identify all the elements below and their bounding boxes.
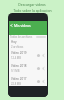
staticText: Video 2019: [11, 51, 27, 55]
staticText: Todos los archivos: [10, 35, 33, 39]
button[interactable]: Video 2018: [9, 62, 47, 75]
staticText: 9.1 MB: [11, 69, 20, 73]
staticText: 22.8 MB: [11, 82, 21, 86]
button[interactable]: Video 2019: [9, 49, 47, 62]
staticText: Video 2017: [11, 77, 27, 81]
other: Download: [37, 67, 40, 70]
other: Share: [42, 80, 45, 83]
staticText: 12.4 MB: [11, 56, 21, 60]
other: Share: [42, 54, 45, 57]
other: Download: [37, 54, 40, 57]
staticText: Hoy: [11, 40, 17, 44]
button[interactable]: Navigate up: [9, 21, 47, 35]
staticText: Mis videos: [14, 23, 31, 28]
other: Download: [37, 80, 40, 83]
other: Share: [42, 67, 45, 70]
button[interactable]: Video 2017: [9, 75, 47, 87]
staticText: Descargar videos: [18, 2, 46, 7]
staticText: Todo sobre la aplicacion: [13, 8, 52, 13]
other: Navigate up: [10, 24, 13, 27]
staticText: Video 2018: [11, 64, 27, 68]
staticText: 2 archivos: [11, 45, 24, 49]
button[interactable]: Hoy: [9, 39, 47, 49]
